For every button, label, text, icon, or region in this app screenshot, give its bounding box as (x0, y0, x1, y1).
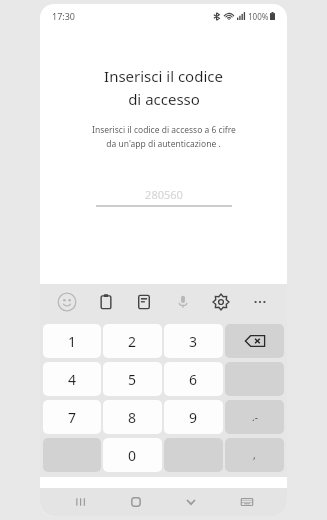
staticText: 5 (128, 370, 137, 389)
button[interactable]: 1 (43, 324, 101, 358)
button[interactable]: Recent apps (60, 489, 100, 515)
button[interactable]: Home (116, 489, 156, 515)
button[interactable]: .- (225, 400, 284, 434)
staticText: di accesso (128, 89, 200, 109)
button[interactable]: Settings (208, 289, 234, 315)
staticText: 6 (189, 370, 198, 389)
staticText: da un'app di autenticazione . (106, 138, 221, 150)
staticText: 3 (189, 332, 198, 351)
button[interactable]: 5 (103, 362, 162, 396)
staticText: Inserisci il codice (104, 66, 223, 86)
button[interactable]: 9 (164, 400, 223, 434)
staticText: 0 (128, 446, 137, 465)
button[interactable]: Voice input (170, 289, 196, 315)
staticText: Inserisci il codice di accesso a 6 cifre (92, 124, 236, 136)
button[interactable]: Hide keyboard (171, 489, 211, 515)
staticText: , (253, 448, 256, 462)
staticText: 280560 (145, 187, 183, 202)
staticText: .- (252, 410, 258, 424)
staticText: 7 (68, 408, 77, 427)
staticText: 9 (189, 408, 198, 427)
button[interactable]: 6 (164, 362, 223, 396)
button[interactable]: 7 (43, 400, 101, 434)
staticText: 2 (128, 332, 137, 351)
button[interactable]: 280560 (96, 183, 232, 205)
button[interactable]: Backspace (225, 324, 284, 358)
staticText: 1 (68, 332, 77, 351)
staticText: 8 (128, 408, 137, 427)
button[interactable]: Sticker (131, 289, 157, 315)
button[interactable]: More options (247, 289, 273, 315)
button[interactable]: Clipboard (93, 289, 119, 315)
button[interactable]: 0 (103, 438, 162, 472)
button[interactable]: Emoji (54, 289, 80, 315)
button[interactable]: , (225, 438, 284, 472)
staticText: 17:30 (52, 10, 76, 22)
staticText: 4 (68, 370, 77, 389)
button[interactable]: 8 (103, 400, 162, 434)
button[interactable]: 4 (43, 362, 101, 396)
button[interactable]: 2 (103, 324, 162, 358)
button[interactable]: Switch keyboard (227, 489, 267, 515)
button[interactable]: 3 (164, 324, 223, 358)
staticText: 100% (248, 11, 269, 22)
